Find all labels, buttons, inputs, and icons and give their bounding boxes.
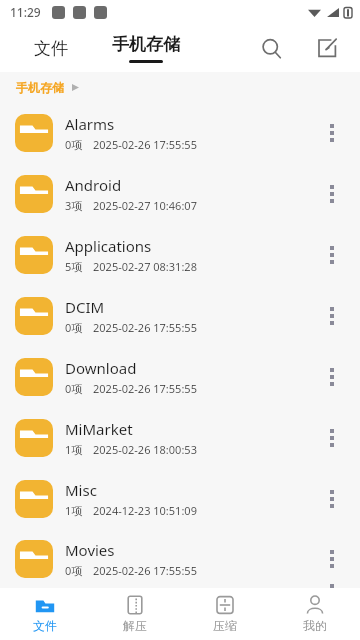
staticText: 手机存储 xyxy=(16,80,64,95)
staticText: 0项 xyxy=(65,137,83,152)
staticText: 2025-02-26 17:55:55 xyxy=(93,320,197,335)
button[interactable]: Misc xyxy=(0,468,360,529)
button[interactable]: More options xyxy=(312,418,352,458)
staticText: 2025-02-26 17:55:55 xyxy=(93,381,197,396)
staticText: Android xyxy=(65,175,122,195)
button[interactable]: 压缩 xyxy=(180,588,270,640)
button[interactable]: More options xyxy=(312,357,352,397)
staticText: 0项 xyxy=(65,381,83,396)
button[interactable]: More options xyxy=(312,479,352,519)
staticText: 文件 xyxy=(33,618,57,633)
button[interactable]: 我的 xyxy=(270,588,360,640)
staticText: Alarms xyxy=(65,114,115,134)
staticText: 2024-12-23 10:51:09 xyxy=(93,503,197,518)
button[interactable]: Download xyxy=(0,346,360,407)
staticText: Download xyxy=(65,358,137,378)
button[interactable]: More options xyxy=(312,539,352,579)
staticText: 压缩 xyxy=(213,618,237,633)
staticText: 我的 xyxy=(303,618,327,633)
staticText: 解压 xyxy=(123,618,147,633)
button[interactable]: Movies xyxy=(0,529,360,588)
button[interactable]: 手机存储 xyxy=(106,34,186,63)
staticText: 0项 xyxy=(65,563,83,578)
staticText: Misc xyxy=(65,480,97,500)
staticText: MiMarket xyxy=(65,419,133,439)
staticText: 5项 xyxy=(65,259,83,274)
button[interactable]: Search xyxy=(254,31,288,65)
staticText: 11:29 xyxy=(10,4,41,20)
button[interactable]: 文件 xyxy=(28,32,74,65)
staticText: 2025-02-26 17:55:55 xyxy=(93,137,197,152)
staticText: 1项 xyxy=(65,442,83,457)
staticText: 2025-02-27 10:46:07 xyxy=(93,198,197,213)
button[interactable]: More options xyxy=(312,113,352,153)
button[interactable]: Android xyxy=(0,163,360,224)
button[interactable]: Alarms xyxy=(0,102,360,163)
button[interactable]: 解压 xyxy=(90,588,180,640)
button[interactable]: DCIM xyxy=(0,285,360,346)
staticText: 2025-02-26 17:55:55 xyxy=(93,563,197,578)
button[interactable]: 文件 xyxy=(0,588,90,640)
button[interactable]: More options xyxy=(312,296,352,336)
staticText: Movies xyxy=(65,540,115,560)
staticText: 0项 xyxy=(65,320,83,335)
button[interactable]: More options xyxy=(312,174,352,214)
staticText: 1项 xyxy=(65,503,83,518)
button[interactable]: More options xyxy=(312,235,352,275)
staticText: Applications xyxy=(65,236,152,256)
button[interactable]: 手机存储 xyxy=(14,76,81,99)
staticText: 3项 xyxy=(65,198,83,213)
staticText: 2025-02-27 08:31:28 xyxy=(93,259,197,274)
staticText: 2025-02-26 18:00:53 xyxy=(93,442,197,457)
staticText: 手机存储 xyxy=(112,34,180,55)
button[interactable]: MiMarket xyxy=(0,407,360,468)
staticText: 文件 xyxy=(34,38,68,59)
button[interactable]: Applications xyxy=(0,224,360,285)
staticText: DCIM xyxy=(65,297,105,317)
button[interactable]: Edit xyxy=(310,31,344,65)
